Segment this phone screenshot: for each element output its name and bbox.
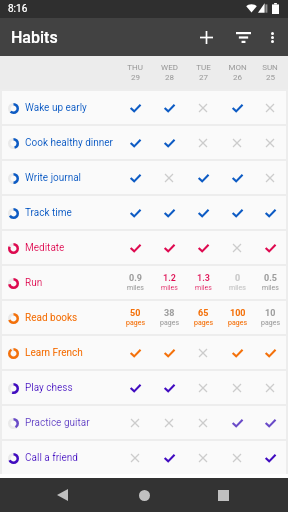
staticText: 8:16 <box>8 3 28 15</box>
button[interactable] <box>152 161 186 194</box>
staticText: Run <box>25 277 43 289</box>
button[interactable] <box>118 441 152 474</box>
button[interactable] <box>220 196 254 229</box>
button[interactable] <box>254 371 286 404</box>
button[interactable]: Call a friend <box>2 441 118 474</box>
button[interactable]: 0.5 <box>254 266 286 299</box>
staticText: Habits <box>11 28 58 47</box>
staticText: 25 <box>266 73 275 82</box>
button[interactable] <box>254 406 286 439</box>
staticText: Track time <box>25 207 72 219</box>
button[interactable]: Track time <box>2 196 118 229</box>
button[interactable] <box>254 336 286 369</box>
button[interactable]: 0 <box>220 266 254 299</box>
staticText: 0.9 <box>129 273 142 284</box>
staticText: pages <box>194 319 213 327</box>
button[interactable]: Filter <box>225 18 261 56</box>
staticText: Meditate <box>25 242 65 254</box>
button[interactable]: 1.3 <box>186 266 220 299</box>
button[interactable] <box>118 371 152 404</box>
button[interactable]: 50 <box>118 301 152 334</box>
button[interactable]: 10 <box>254 301 286 334</box>
staticText: Write journal <box>25 172 82 184</box>
button[interactable]: Practice guitar <box>2 406 118 439</box>
button[interactable]: Meditate <box>2 231 118 264</box>
button[interactable] <box>186 91 220 124</box>
button[interactable] <box>118 161 152 194</box>
button[interactable] <box>152 371 186 404</box>
staticText: Cook healthy dinner <box>25 137 113 149</box>
button[interactable] <box>186 231 220 264</box>
button[interactable]: 65 <box>186 301 220 334</box>
button[interactable] <box>186 371 220 404</box>
button[interactable] <box>254 231 286 264</box>
staticText: TUE <box>196 63 211 72</box>
button[interactable]: Add habit <box>188 18 224 56</box>
button[interactable]: Back <box>48 481 76 509</box>
button[interactable] <box>254 161 286 194</box>
staticText: 0.5 <box>264 273 277 284</box>
button[interactable]: Run <box>2 266 118 299</box>
staticText: 1.3 <box>197 273 210 284</box>
staticText: miles <box>262 284 279 292</box>
button[interactable] <box>220 406 254 439</box>
staticText: 65 <box>198 308 209 319</box>
button[interactable]: Home <box>130 481 158 509</box>
button[interactable]: Write journal <box>2 161 118 194</box>
button[interactable]: Read books <box>2 301 118 334</box>
button[interactable]: Cook healthy dinner <box>2 126 118 159</box>
button[interactable] <box>186 441 220 474</box>
button[interactable] <box>186 336 220 369</box>
staticText: THU <box>127 63 143 72</box>
button[interactable] <box>220 231 254 264</box>
button[interactable]: Play chess <box>2 371 118 404</box>
button[interactable] <box>118 406 152 439</box>
button[interactable]: Learn French <box>2 336 118 369</box>
button[interactable] <box>118 126 152 159</box>
button[interactable] <box>220 336 254 369</box>
button[interactable] <box>254 196 286 229</box>
staticText: Read books <box>25 312 78 324</box>
button[interactable] <box>186 126 220 159</box>
button[interactable] <box>254 441 286 474</box>
button[interactable]: 0.9 <box>118 266 152 299</box>
button[interactable] <box>118 231 152 264</box>
button[interactable] <box>220 161 254 194</box>
staticText: miles <box>161 284 178 292</box>
button[interactable] <box>186 161 220 194</box>
button[interactable] <box>254 126 286 159</box>
button[interactable] <box>118 336 152 369</box>
button[interactable]: Recent apps <box>209 481 237 509</box>
button[interactable]: 1.2 <box>152 266 186 299</box>
staticText: 10 <box>265 308 276 319</box>
button[interactable] <box>118 196 152 229</box>
button[interactable] <box>220 371 254 404</box>
button[interactable] <box>152 91 186 124</box>
staticText: 27 <box>199 73 208 82</box>
staticText: Call a friend <box>25 452 78 464</box>
button[interactable] <box>186 196 220 229</box>
button[interactable] <box>152 441 186 474</box>
button[interactable] <box>152 126 186 159</box>
button[interactable] <box>152 231 186 264</box>
button[interactable] <box>220 126 254 159</box>
button[interactable] <box>254 91 286 124</box>
button[interactable] <box>152 196 186 229</box>
staticText: WED <box>161 63 178 72</box>
button[interactable] <box>186 406 220 439</box>
button[interactable] <box>118 91 152 124</box>
button[interactable] <box>152 336 186 369</box>
button[interactable]: 100 <box>220 301 254 334</box>
staticText: 26 <box>233 73 242 82</box>
staticText: miles <box>195 284 212 292</box>
button[interactable] <box>220 91 254 124</box>
staticText: pages <box>160 319 179 327</box>
staticText: 38 <box>164 308 175 319</box>
button[interactable]: 38 <box>152 301 186 334</box>
button[interactable] <box>152 406 186 439</box>
button[interactable]: More options <box>256 18 288 56</box>
button[interactable]: Wake up early <box>2 91 118 124</box>
staticText: MON <box>228 63 247 72</box>
staticText: SUN <box>262 63 278 72</box>
button[interactable] <box>220 441 254 474</box>
